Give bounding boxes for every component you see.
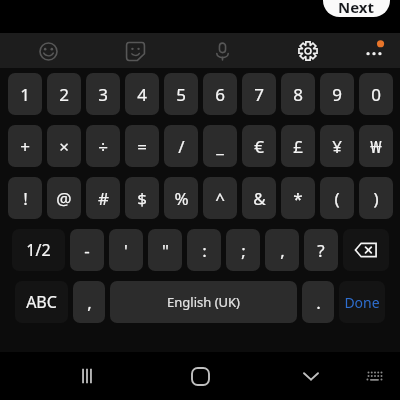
button[interactable]: ^: [203, 177, 237, 219]
button[interactable]: ÷: [86, 125, 120, 167]
button[interactable]: ABC: [15, 281, 68, 323]
staticText: +: [20, 135, 30, 158]
staticText: %: [174, 187, 189, 210]
button[interactable]: ×: [47, 125, 81, 167]
staticText: ;: [241, 239, 246, 262]
button[interactable]: €: [242, 125, 276, 167]
staticText: $: [137, 187, 147, 210]
button[interactable]: £: [281, 125, 315, 167]
button[interactable]: Next: [323, 0, 390, 17]
staticText: /: [178, 135, 185, 158]
button[interactable]: Settings: [291, 34, 325, 68]
staticText: 9: [332, 83, 342, 106]
button[interactable]: #: [86, 177, 120, 219]
button[interactable]: ,: [265, 229, 299, 271]
staticText: ": [162, 239, 169, 262]
button[interactable]: +: [8, 125, 42, 167]
button[interactable]: (: [320, 177, 354, 219]
staticText: ?: [317, 239, 325, 262]
staticText: 8: [293, 83, 303, 106]
button[interactable]: 6: [203, 73, 237, 115]
button[interactable]: 4: [125, 73, 159, 115]
staticText: English (UK): [167, 293, 240, 311]
button[interactable]: 8: [281, 73, 315, 115]
button[interactable]: 0: [359, 73, 393, 115]
button[interactable]: ': [109, 229, 143, 271]
button[interactable]: 1/2: [12, 229, 65, 271]
button[interactable]: 1: [8, 73, 42, 115]
button[interactable]: $: [125, 177, 159, 219]
staticText: _: [216, 135, 224, 158]
button[interactable]: 5: [164, 73, 198, 115]
button[interactable]: Voice input: [205, 34, 239, 68]
button[interactable]: Change keyboard: [355, 356, 395, 396]
button[interactable]: ): [359, 177, 393, 219]
button[interactable]: ?: [304, 229, 338, 271]
staticText: ,: [280, 239, 285, 262]
staticText: ÷: [98, 135, 108, 158]
button[interactable]: 7: [242, 73, 276, 115]
button[interactable]: -: [70, 229, 104, 271]
staticText: ABC: [26, 291, 57, 313]
button[interactable]: &: [242, 177, 276, 219]
button[interactable]: /: [164, 125, 198, 167]
button[interactable]: 9: [320, 73, 354, 115]
staticText: =: [137, 135, 147, 158]
button[interactable]: English (UK): [110, 281, 297, 323]
staticText: 1/2: [26, 239, 51, 261]
staticText: 4: [137, 83, 147, 106]
staticText: 0: [371, 83, 381, 106]
button[interactable]: *: [281, 177, 315, 219]
staticText: :: [202, 239, 207, 262]
staticText: ^: [215, 187, 225, 210]
button[interactable]: ¥: [320, 125, 354, 167]
button[interactable]: Recent apps: [65, 354, 109, 398]
button[interactable]: ": [148, 229, 182, 271]
button[interactable]: Backspace: [343, 229, 389, 271]
button[interactable]: Done: [339, 281, 385, 323]
staticText: !: [23, 187, 28, 210]
staticText: 1: [20, 83, 30, 106]
staticText: &: [253, 187, 266, 210]
button[interactable]: Emoji: [31, 34, 65, 68]
button[interactable]: %: [164, 177, 198, 219]
staticText: -: [84, 239, 90, 262]
button[interactable]: 3: [86, 73, 120, 115]
staticText: €: [254, 135, 264, 158]
staticText: 7: [254, 83, 264, 106]
staticText: ₩: [370, 135, 382, 158]
staticText: 5: [176, 83, 186, 106]
staticText: £: [293, 135, 303, 158]
staticText: 2: [59, 83, 69, 106]
staticText: Done: [344, 293, 380, 312]
staticText: ,: [87, 291, 92, 314]
button[interactable]: ;: [226, 229, 260, 271]
button[interactable]: 2: [47, 73, 81, 115]
button[interactable]: More options: [357, 34, 391, 68]
staticText: *: [293, 187, 303, 210]
button[interactable]: .: [302, 281, 334, 323]
button[interactable]: @: [47, 177, 81, 219]
staticText: #: [98, 187, 109, 210]
button[interactable]: Hide keyboard: [289, 354, 333, 398]
button[interactable]: !: [8, 177, 42, 219]
button[interactable]: _: [203, 125, 237, 167]
staticText: .: [316, 291, 321, 314]
staticText: (: [334, 187, 340, 210]
staticText: ): [373, 187, 379, 210]
staticText: 3: [98, 83, 108, 106]
staticText: ': [124, 239, 128, 262]
button[interactable]: Home: [178, 354, 222, 398]
staticText: 6: [215, 83, 225, 106]
button[interactable]: :: [187, 229, 221, 271]
staticText: Next: [338, 0, 375, 17]
button[interactable]: ,: [73, 281, 105, 323]
staticText: @: [56, 187, 72, 210]
staticText: ×: [59, 135, 69, 158]
button[interactable]: ₩: [359, 125, 393, 167]
staticText: ¥: [332, 135, 342, 158]
button[interactable]: =: [125, 125, 159, 167]
button[interactable]: Stickers: [118, 34, 152, 68]
